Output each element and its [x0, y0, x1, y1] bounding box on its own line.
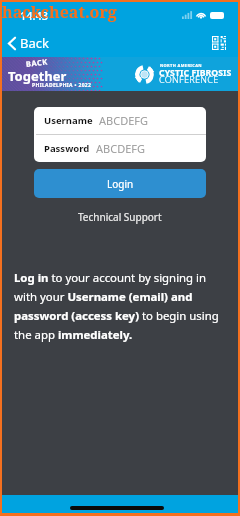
staticText: Back: [20, 34, 49, 52]
staticText: ABCDEFG: [96, 141, 145, 156]
staticText: Username: [44, 114, 93, 127]
staticText: CONFERENCE: [159, 73, 219, 86]
button[interactable]: Username: [34, 107, 206, 134]
button[interactable]: Technical Support: [72, 208, 168, 226]
staticText: PHILADELPHIA • 2022: [32, 82, 92, 89]
staticText: ABCDEFG: [99, 113, 148, 128]
staticText: 14:43: [20, 8, 49, 23]
button[interactable]: Password: [34, 135, 206, 162]
staticText: NORTH AMERICAN: [160, 63, 202, 68]
button[interactable]: Login: [34, 169, 206, 198]
staticText: BACK: [25, 56, 48, 69]
staticText: Together: [8, 67, 67, 85]
staticText: CYSTIC FIBROSIS: [159, 67, 232, 79]
staticText: Password: [44, 142, 90, 155]
staticText: hackcheat.org: [2, 1, 117, 23]
button[interactable]: Scan QR code: [212, 36, 226, 50]
staticText: Log in to your account by signing in wit…: [14, 270, 221, 342]
button[interactable]: Back: [2, 30, 59, 56]
staticText: Login: [107, 177, 134, 191]
